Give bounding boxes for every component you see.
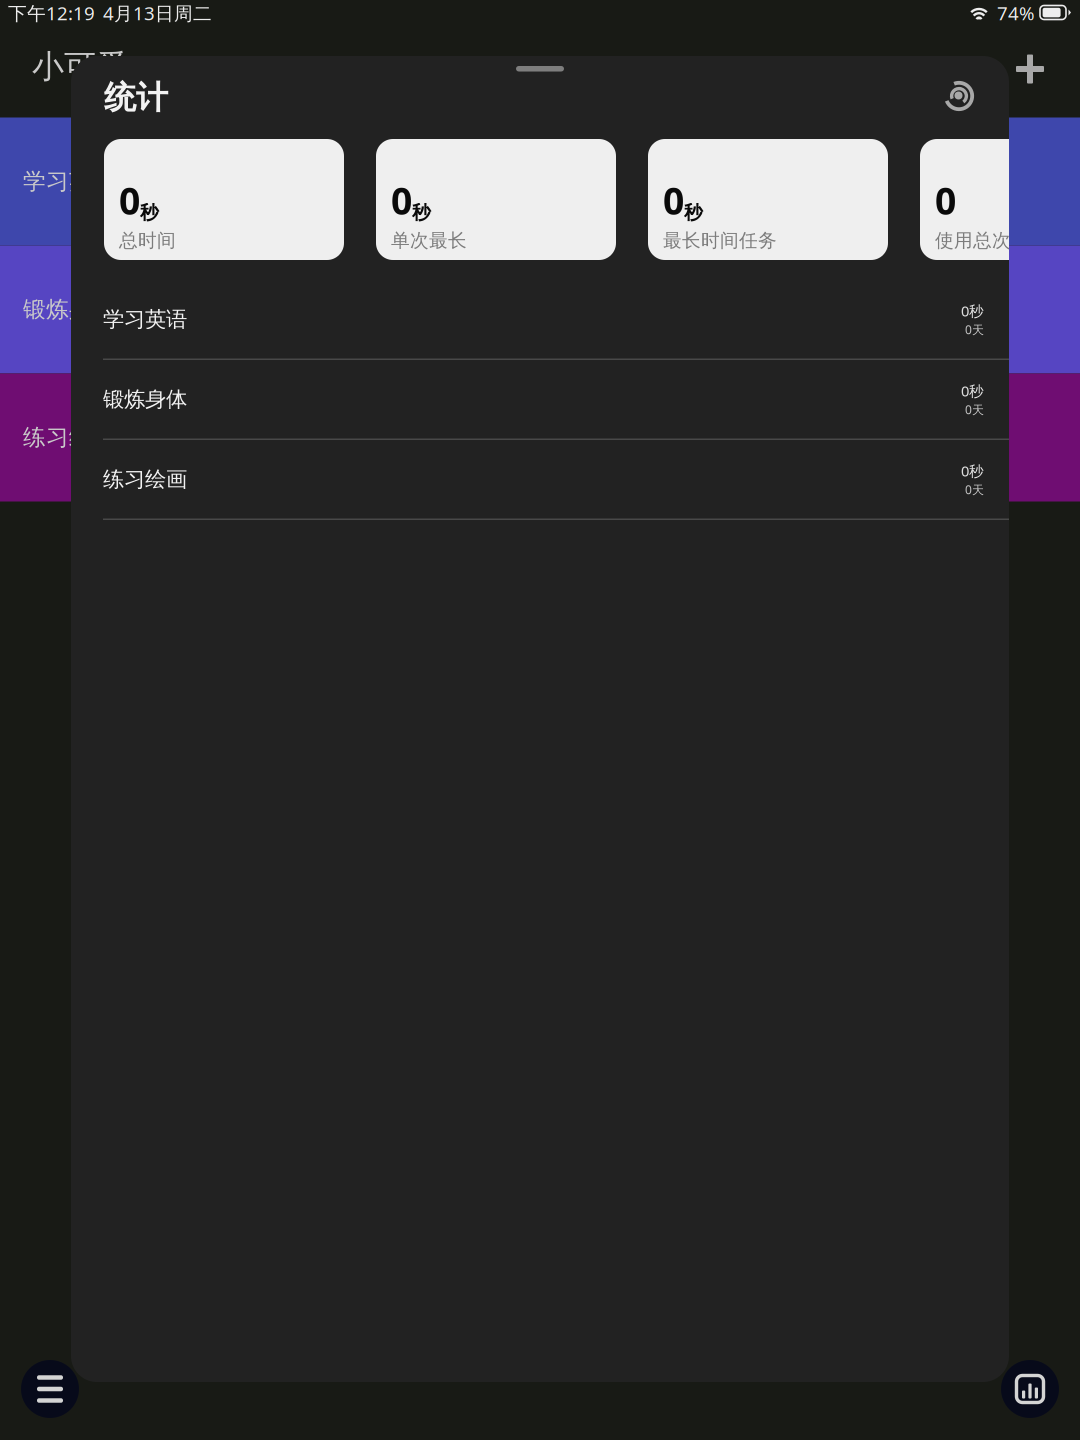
button[interactable]: 锻炼身体 <box>71 360 1009 440</box>
staticText: 学习英语 <box>23 168 115 195</box>
staticText: 0天 <box>965 322 984 337</box>
staticText: 74% <box>997 1 1035 25</box>
staticText: 锻炼身体 <box>23 296 115 323</box>
staticText: 总时间 <box>119 229 176 252</box>
staticText: 最长时间任务 <box>663 229 777 252</box>
button[interactable]: 练习绘画 <box>0 373 1080 501</box>
button[interactable]: 锻炼身体 <box>0 245 1080 373</box>
button[interactable]: Statistics <box>1001 1360 1059 1418</box>
staticText: 下午12:19 <box>8 1 95 25</box>
staticText: 小可爱 <box>32 47 128 86</box>
button[interactable]: 学习英语 <box>0 117 1080 245</box>
staticText: 0 <box>119 175 140 225</box>
staticText: 学习英语 <box>103 306 187 332</box>
button[interactable]: Menu <box>21 1360 79 1418</box>
staticText: 0 <box>391 175 412 225</box>
staticText: 练习绘画 <box>23 424 115 451</box>
staticText: 0秒 <box>961 301 984 321</box>
staticText: 统计 <box>104 78 168 117</box>
staticText: 4月13日周二 <box>103 1 212 25</box>
button[interactable]: 学习英语 <box>71 280 1009 360</box>
staticText: 秒 <box>412 201 431 224</box>
staticText: 0秒 <box>961 461 984 481</box>
staticText: 秒 <box>140 201 159 224</box>
button[interactable]: 练习绘画 <box>71 440 1009 520</box>
button[interactable]: Add task <box>1008 47 1052 91</box>
staticText: 练习绘画 <box>103 466 187 492</box>
staticText: 0 <box>935 175 956 225</box>
staticText: 0天 <box>965 482 984 497</box>
staticText: 秒 <box>684 201 703 224</box>
staticText: 锻炼身体 <box>103 386 187 412</box>
staticText: 0秒 <box>961 381 984 401</box>
staticText: 0 <box>663 175 684 225</box>
staticText: 单次最长 <box>391 229 467 252</box>
button[interactable]: Focus timer <box>943 80 975 112</box>
staticText: 使用总次数 <box>935 229 1030 252</box>
staticText: 0天 <box>965 402 984 417</box>
